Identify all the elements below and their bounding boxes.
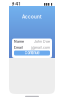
staticText: Email (14, 45, 23, 50)
staticText: Account (22, 14, 42, 19)
staticText: John Doe (34, 39, 50, 44)
staticText: Name (14, 39, 24, 44)
staticText: ▮▮▮ (44, 2, 50, 6)
staticText: 9:41 (11, 1, 20, 7)
button[interactable]: Continue (14, 50, 50, 55)
staticText: j@mail.com (31, 45, 50, 50)
staticText: ▮ (50, 2, 52, 6)
staticText: Continue (24, 51, 39, 55)
